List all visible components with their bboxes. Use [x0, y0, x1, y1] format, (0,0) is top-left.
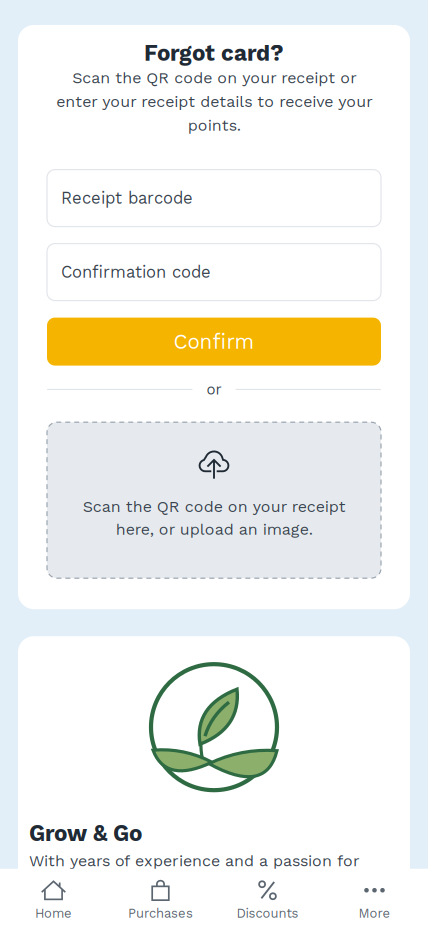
button[interactable]: Purchases: [107, 869, 214, 932]
staticText: or: [206, 381, 221, 398]
staticText: Home: [35, 906, 72, 921]
staticText: Scan the QR code on your receipt here, o…: [82, 497, 345, 539]
button[interactable]: More: [321, 869, 428, 932]
staticText: Confirm: [173, 329, 254, 354]
staticText: Forgot card?: [144, 40, 284, 66]
staticText: Purchases: [128, 906, 193, 921]
staticText: Receipt barcode: [61, 188, 193, 208]
button[interactable]: Confirmation code: [47, 244, 381, 301]
button[interactable]: Discounts: [214, 869, 321, 932]
button[interactable]: Home: [0, 869, 107, 932]
staticText: Grow & Go: [29, 820, 142, 846]
button[interactable]: Receipt barcode: [47, 170, 381, 227]
button[interactable]: Confirm: [47, 318, 381, 366]
staticText: Discounts: [236, 906, 298, 921]
staticText: More: [358, 906, 390, 921]
staticText: Confirmation code: [61, 262, 211, 282]
staticText: Scan the QR code on your receipt or ente…: [56, 68, 372, 135]
staticText: With years of experience and a passion f…: [29, 851, 362, 893]
